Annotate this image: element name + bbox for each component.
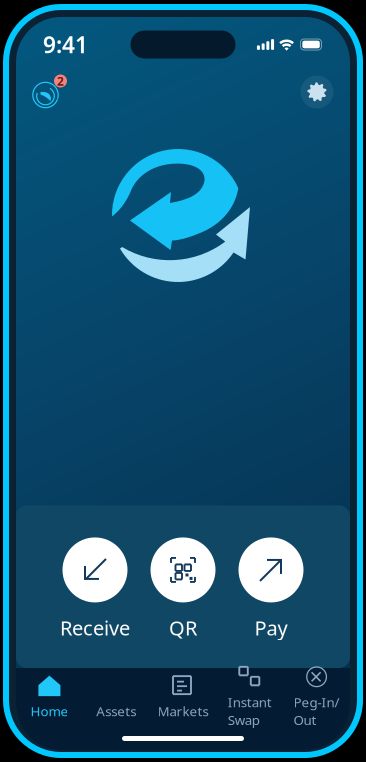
button[interactable]: Receive [51,537,139,641]
staticText: 9:41 [43,29,88,59]
staticText: Pay [254,614,287,641]
button[interactable]: Markets [150,674,216,720]
button[interactable]: Pay [227,537,315,641]
button[interactable]: Settings [297,73,337,111]
button[interactable]: Notifications [29,73,69,111]
button[interactable]: Home [16,674,83,720]
staticText: Instant Swap [228,693,272,729]
staticText: Assets [96,702,136,720]
staticText: 2 [57,73,64,89]
button[interactable]: Peg-In/Out [283,665,350,729]
button[interactable]: Instant Swap [216,665,283,729]
button[interactable]: QR [139,537,227,641]
staticText: Home [30,702,68,720]
button[interactable]: Assets [83,674,150,720]
staticText: Markets [157,702,208,720]
staticText: QR [169,614,197,641]
staticText: Receive [60,614,130,641]
staticText: Peg-In/Out [294,693,340,729]
